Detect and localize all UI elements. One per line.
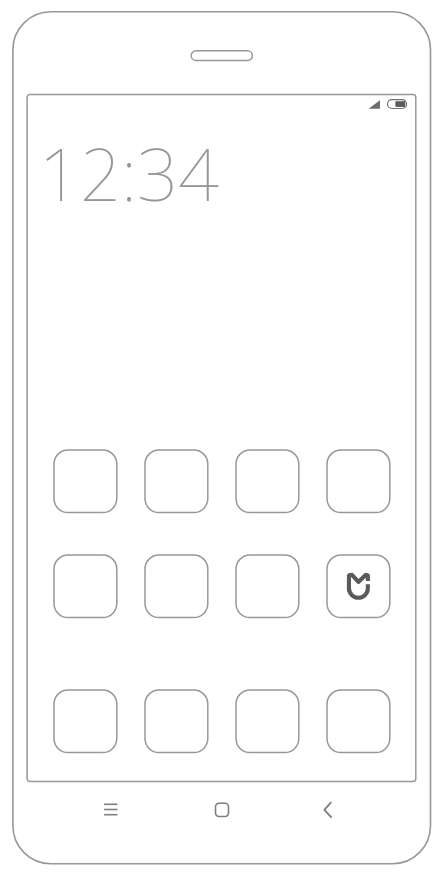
button[interactable]: App 1 [54,450,117,513]
button[interactable]: App 9 [54,690,117,753]
button[interactable]: App 11 [236,690,299,753]
button[interactable]: Mi Home app [327,555,390,618]
button[interactable]: App 4 [327,450,390,513]
button[interactable]: App 7 [236,555,299,618]
button[interactable]: App 5 [54,555,117,618]
button[interactable]: App 6 [145,555,208,618]
button[interactable]: App 12 [327,690,390,753]
button[interactable]: Home [205,796,239,824]
button[interactable]: App 3 [236,450,299,513]
button[interactable]: Back [316,796,350,824]
staticText: 12:34 [39,124,220,222]
button[interactable]: App 10 [145,690,208,753]
button[interactable]: Recent apps [94,796,128,824]
button[interactable]: App 2 [145,450,208,513]
